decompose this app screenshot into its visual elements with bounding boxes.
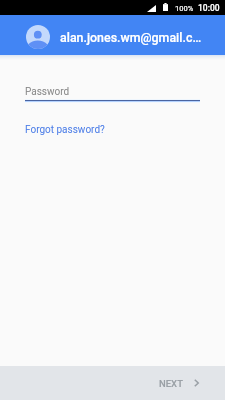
other: Next xyxy=(194,379,199,387)
button[interactable]: NEXT xyxy=(149,366,215,400)
staticText: NEXT xyxy=(159,378,183,389)
button[interactable]: Account avatar xyxy=(0,15,225,55)
staticText: 10:00 xyxy=(198,3,220,13)
staticText: Forgot password? xyxy=(25,124,105,136)
button[interactable]: Forgot password? xyxy=(25,124,105,136)
staticText: 100% xyxy=(175,4,194,13)
staticText: Password xyxy=(25,86,70,98)
other: Account avatar xyxy=(26,25,50,49)
staticText: alan.jones.wm@gmail.c… xyxy=(60,30,202,45)
